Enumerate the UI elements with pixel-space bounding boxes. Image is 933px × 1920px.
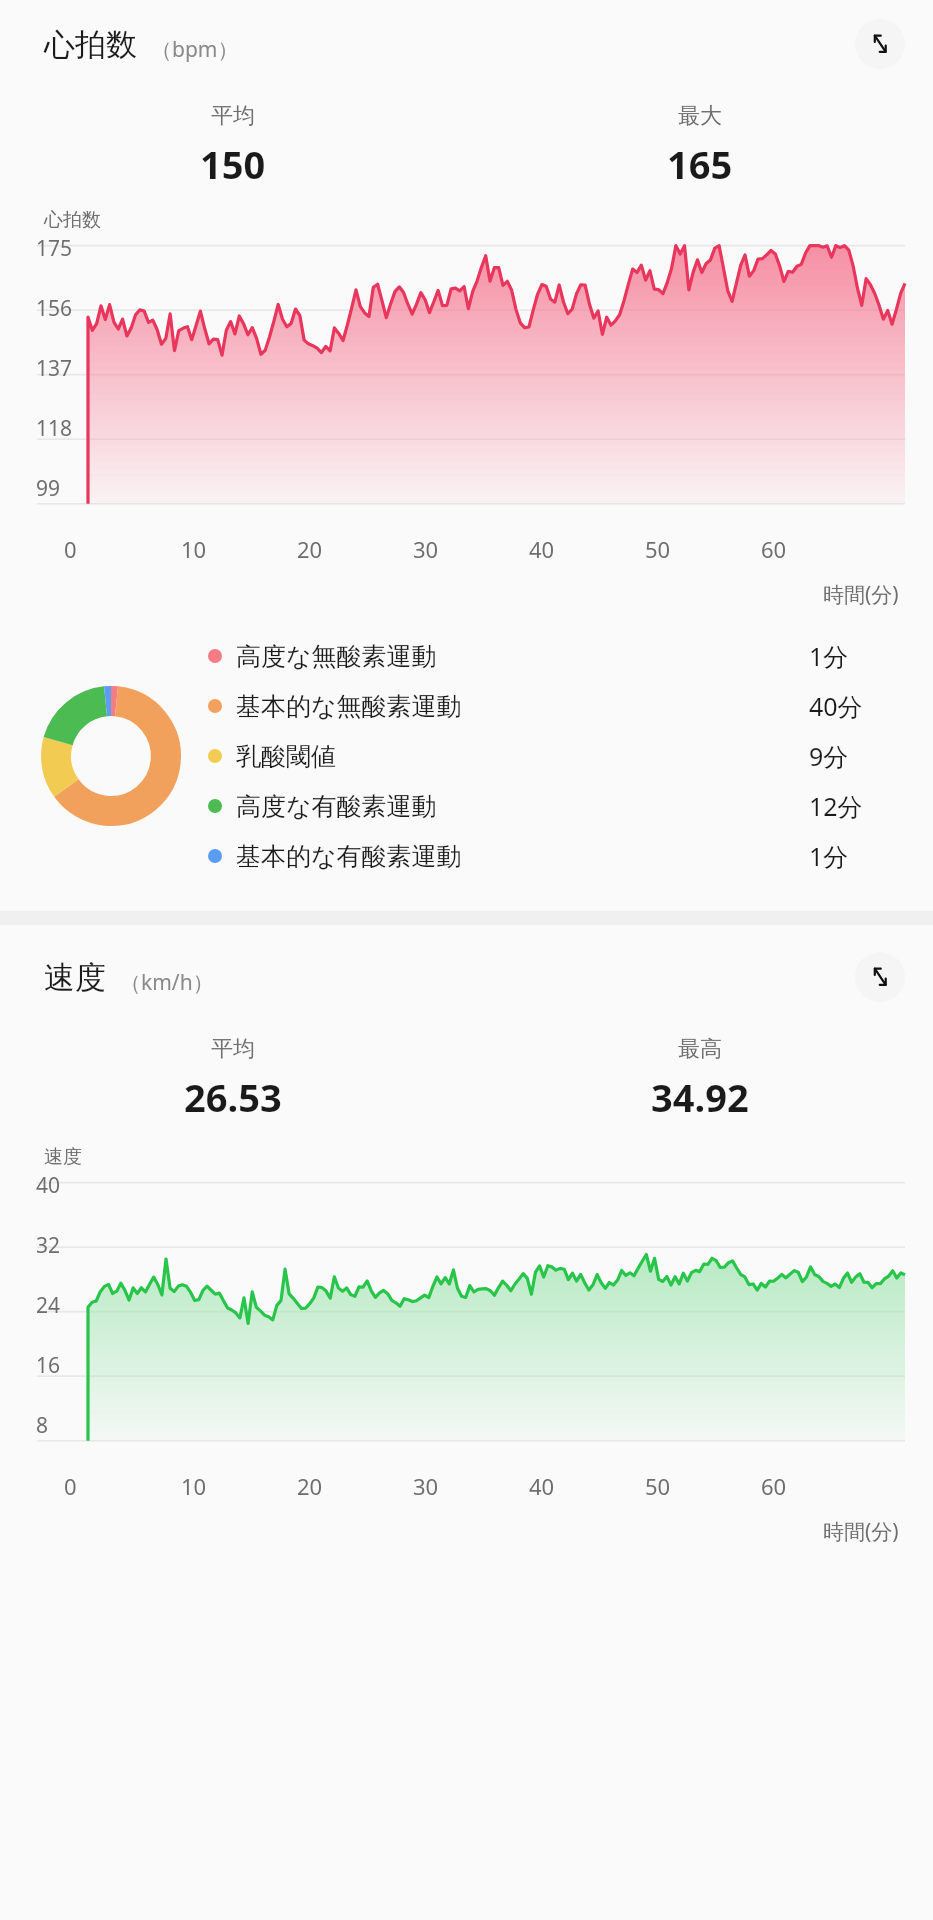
staticText: 0 [64, 534, 77, 564]
staticText: 118 [36, 414, 73, 443]
staticText: 20 [297, 534, 323, 564]
staticText: 最高 [678, 1035, 722, 1063]
staticText: 10 [181, 534, 207, 564]
staticText: 基本的な有酸素運動 [236, 841, 809, 872]
staticText: 1分 [809, 839, 905, 873]
staticText: 時間(分) [823, 1517, 899, 1546]
button[interactable]: 速度を拡大 [855, 952, 905, 1002]
staticText: 40 [36, 1171, 61, 1200]
staticText: 時間(分) [823, 580, 899, 609]
staticText: 9分 [809, 739, 905, 773]
button[interactable]: 心拍数を拡大 [855, 19, 905, 69]
staticText: 40分 [809, 689, 905, 723]
staticText: 40 [529, 534, 555, 564]
staticText: 最大 [678, 102, 722, 130]
staticText: 175 [36, 234, 73, 263]
staticText: 156 [36, 294, 73, 323]
button[interactable]: 乳酸閾値 [208, 731, 905, 781]
staticText: （km/h） [120, 968, 214, 997]
staticText: 速度 [44, 1145, 82, 1169]
staticText: 50 [645, 1471, 671, 1501]
staticText: 乳酸閾値 [236, 741, 809, 772]
staticText: 1分 [809, 639, 905, 673]
staticText: 平均 [211, 1035, 255, 1063]
staticText: 0 [64, 1471, 77, 1501]
staticText: 16 [36, 1351, 61, 1380]
staticText: 165 [667, 138, 733, 190]
staticText: 24 [36, 1291, 61, 1320]
staticText: （bpm） [151, 35, 239, 64]
staticText: 99 [36, 474, 61, 503]
button[interactable]: 基本的な無酸素運動 [208, 681, 905, 731]
staticText: 30 [413, 534, 439, 564]
staticText: 32 [36, 1231, 61, 1260]
button[interactable]: 基本的な有酸素運動 [208, 831, 905, 881]
staticText: 34.92 [651, 1071, 749, 1123]
staticText: 速度 [44, 958, 106, 997]
staticText: 高度な無酸素運動 [236, 641, 809, 672]
staticText: 60 [761, 534, 787, 564]
staticText: 8 [36, 1411, 49, 1440]
staticText: 26.53 [184, 1071, 282, 1123]
staticText: 心拍数 [44, 25, 137, 64]
staticText: 20 [297, 1471, 323, 1501]
staticText: 40 [529, 1471, 555, 1501]
staticText: 10 [181, 1471, 207, 1501]
staticText: 50 [645, 534, 671, 564]
staticText: 平均 [211, 102, 255, 130]
staticText: 12分 [809, 789, 905, 823]
button[interactable]: 高度な無酸素運動 [208, 631, 905, 681]
staticText: 137 [36, 354, 73, 383]
staticText: 150 [200, 138, 266, 190]
staticText: 心拍数 [44, 208, 101, 232]
staticText: 高度な有酸素運動 [236, 791, 809, 822]
staticText: 基本的な無酸素運動 [236, 691, 809, 722]
button[interactable]: 高度な有酸素運動 [208, 781, 905, 831]
staticText: 30 [413, 1471, 439, 1501]
staticText: 60 [761, 1471, 787, 1501]
